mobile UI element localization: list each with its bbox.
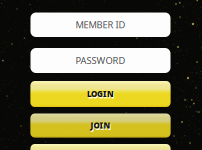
- staticText: LOGIN: [88, 90, 115, 101]
- staticText: PASSWORD: [75, 54, 125, 67]
- button[interactable]: PASSWORD: [30, 48, 170, 73]
- button[interactable]: [30, 144, 170, 150]
- staticText: LOGIN: [87, 89, 114, 99]
- button[interactable]: MEMBER ID: [30, 12, 170, 37]
- staticText: JOIN: [90, 120, 110, 131]
- staticText: JOIN: [91, 121, 111, 132]
- button[interactable]: JOIN: [30, 113, 170, 137]
- staticText: MEMBER ID: [75, 19, 125, 31]
- button[interactable]: LOGIN: [30, 81, 170, 107]
